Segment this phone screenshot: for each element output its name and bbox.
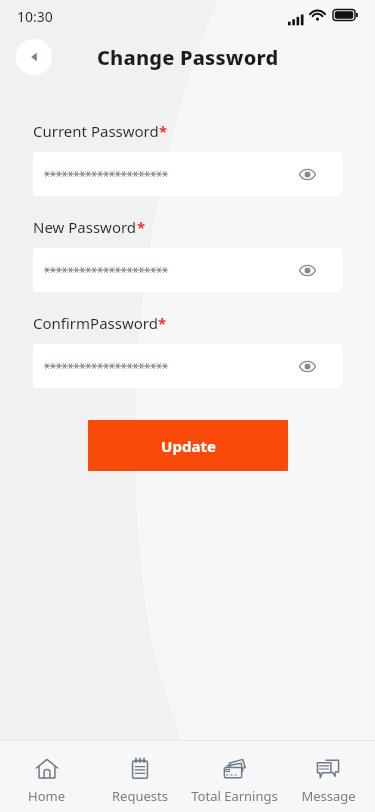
button[interactable]: Message [281,741,375,805]
staticText: Change Password [97,44,279,71]
button[interactable]: Show password [294,257,320,283]
button[interactable]: Requests [93,741,187,805]
button[interactable]: Total Earnings [187,741,281,805]
button[interactable]: Back [16,39,52,75]
staticText: Current Password [33,121,159,141]
staticText: New Password [33,217,137,237]
staticText: Home [28,787,65,805]
button[interactable]: Show password [33,152,342,196]
staticText: * [158,313,167,333]
staticText: ConfirmPassword [33,313,158,333]
staticText: Update [161,436,216,456]
staticText: Message [301,787,356,805]
button[interactable]: Show password [294,161,320,187]
staticText: * [137,217,146,237]
button[interactable]: Show password [294,353,320,379]
staticText: Total Earnings [191,787,278,805]
staticText: * [159,121,168,141]
button[interactable]: Show password [33,344,342,388]
staticText: Requests [112,787,168,805]
button[interactable]: Show password [33,248,342,292]
staticText: 10:30 [17,7,53,26]
button[interactable]: Home [0,741,93,805]
button[interactable]: Update [88,420,288,471]
